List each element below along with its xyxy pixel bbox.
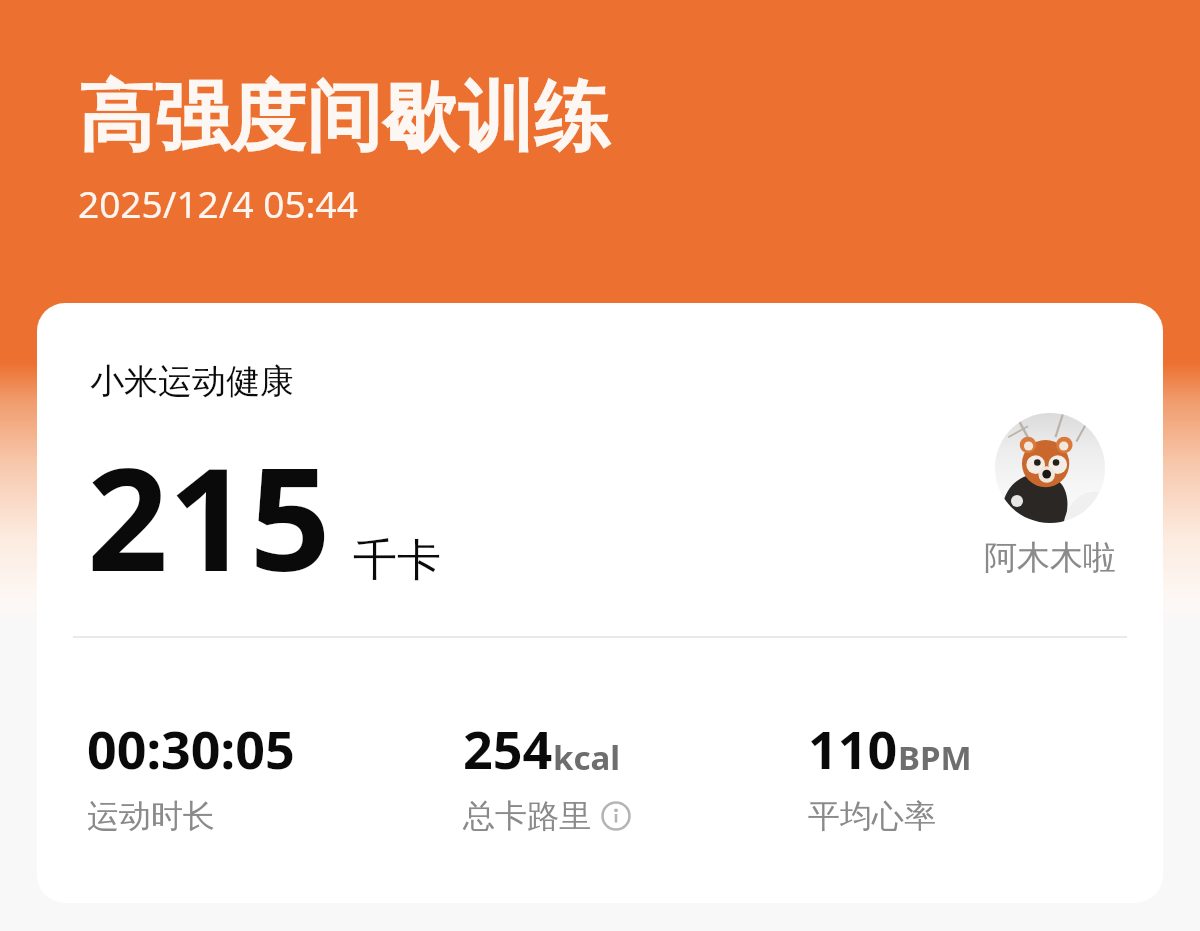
staticText: 运动时长 bbox=[87, 796, 215, 836]
staticText: 平均心率 bbox=[808, 796, 936, 836]
staticText: 阿木木啦 bbox=[984, 537, 1116, 579]
button[interactable]: User profile 阿木木啦 bbox=[967, 413, 1132, 579]
staticText: 高强度间歇训练 bbox=[78, 70, 610, 166]
button[interactable]: 254 bbox=[463, 713, 639, 836]
staticText: 254 bbox=[463, 713, 553, 784]
button[interactable]: 小米运动健康 bbox=[37, 303, 1163, 903]
staticText: 00:30:05 bbox=[87, 713, 295, 784]
staticText: 小米运动健康 bbox=[90, 360, 294, 403]
staticText: 2025/12/4 05:44 bbox=[78, 178, 358, 228]
staticText: 110 bbox=[808, 713, 898, 784]
button[interactable]: Calorie information bbox=[601, 801, 631, 831]
staticText: 千卡 bbox=[353, 533, 441, 588]
staticText: 总卡路里 bbox=[463, 796, 591, 836]
button[interactable]: 00:30:05 bbox=[87, 713, 303, 836]
button[interactable]: 110 bbox=[808, 713, 980, 836]
staticText: kcal bbox=[553, 735, 621, 780]
staticText: BPM bbox=[898, 735, 972, 780]
staticText: 215 bbox=[87, 419, 331, 612]
